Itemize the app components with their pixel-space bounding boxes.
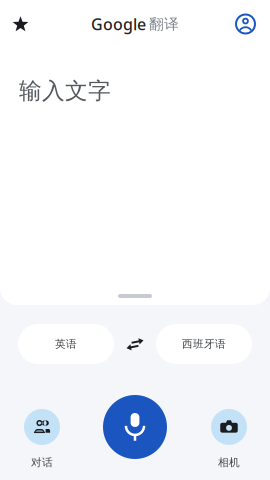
button[interactable]: Saved translations <box>0 0 41 48</box>
button[interactable]: Camera <box>194 406 264 472</box>
button[interactable]: 英语 <box>18 324 114 364</box>
staticText: 西班牙语 <box>182 337 226 350</box>
staticText: 相机 <box>218 456 240 469</box>
button[interactable]: 西班牙语 <box>156 324 252 364</box>
staticText: 对话 <box>31 456 53 469</box>
button[interactable]: Conversation <box>7 406 77 472</box>
staticText: Google <box>91 13 146 35</box>
staticText: 输入文字 <box>19 77 111 105</box>
button[interactable]: Voice input <box>103 395 167 459</box>
button[interactable]: Account <box>221 0 270 48</box>
staticText: 翻译 <box>149 15 179 33</box>
staticText: 英语 <box>55 337 77 350</box>
button[interactable]: Swap languages <box>114 324 156 364</box>
